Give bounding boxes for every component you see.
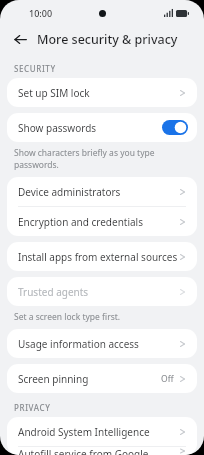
staticText: Off bbox=[161, 373, 174, 385]
staticText: Set a screen lock type first. bbox=[14, 311, 121, 323]
staticText: Android System Intelligence bbox=[18, 425, 178, 439]
button[interactable]: Encryption and credentials bbox=[7, 207, 197, 236]
staticText: Encryption and credentials bbox=[18, 215, 178, 229]
staticText: Show passwords bbox=[18, 121, 162, 135]
staticText: Install apps from external sources bbox=[18, 250, 178, 264]
button[interactable]: Autofill service from Google bbox=[7, 447, 197, 455]
staticText: Show characters briefly as you type pass… bbox=[14, 147, 190, 171]
staticText: 10:00 bbox=[29, 7, 53, 19]
button[interactable]: Screen pinning bbox=[7, 364, 197, 393]
staticText: More security & privacy bbox=[37, 31, 178, 48]
button[interactable]: Show passwords bbox=[7, 113, 197, 142]
staticText: Usage information access bbox=[18, 337, 178, 351]
staticText: Screen pinning bbox=[18, 372, 161, 386]
staticText: Autofill service from Google bbox=[18, 447, 178, 455]
staticText: PRIVACY bbox=[14, 402, 51, 413]
button[interactable]: Trusted agents bbox=[7, 277, 197, 306]
staticText: Trusted agents bbox=[18, 285, 178, 299]
button[interactable]: Android System Intelligence bbox=[7, 417, 197, 446]
staticText: Set up SIM lock bbox=[18, 86, 178, 100]
button[interactable]: Device administrators bbox=[7, 177, 197, 206]
button[interactable]: Back bbox=[8, 27, 32, 51]
button[interactable]: Install apps from external sources bbox=[7, 242, 197, 271]
staticText: SECURITY bbox=[14, 63, 56, 74]
button[interactable]: Set up SIM lock bbox=[7, 78, 197, 107]
button[interactable]: Usage information access bbox=[7, 329, 197, 358]
staticText: Device administrators bbox=[18, 185, 178, 199]
